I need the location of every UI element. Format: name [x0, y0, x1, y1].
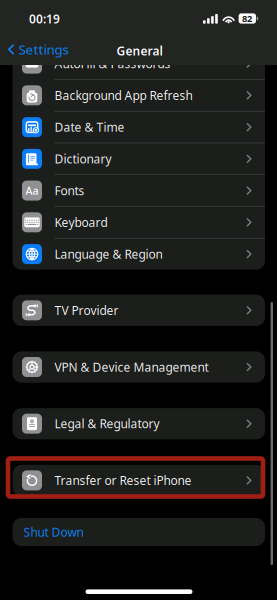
button[interactable]: Shut Down — [12, 518, 265, 546]
staticText: Dictionary — [54, 151, 111, 167]
staticText: 82 — [242, 12, 252, 25]
staticText: Keyboard — [54, 214, 107, 230]
button[interactable]: Transfer or Reset iPhone — [12, 465, 265, 496]
button[interactable]: Dictionary — [12, 143, 265, 174]
button[interactable]: Date & Time — [12, 111, 265, 143]
staticText: Settings — [18, 40, 68, 58]
button[interactable]: VPN & Device Management — [12, 351, 265, 383]
button[interactable]: Keyboard — [12, 207, 265, 238]
staticText: Fonts — [54, 183, 84, 198]
staticText: Date & Time — [54, 119, 124, 135]
staticText: Shut Down — [23, 524, 83, 540]
button[interactable]: Language & Region — [12, 238, 265, 270]
button[interactable]: AutoFill & Passwords — [12, 48, 265, 79]
button[interactable]: Settings — [2, 35, 74, 63]
button[interactable]: Legal & Regulatory — [12, 408, 265, 439]
staticText: VPN & Device Management — [54, 359, 208, 375]
staticText: 00:19 — [29, 11, 60, 27]
staticText: TV Provider — [54, 302, 118, 318]
button[interactable]: Background App Refresh — [12, 80, 265, 111]
staticText: Aa — [25, 183, 38, 198]
staticText: Language & Region — [54, 246, 162, 262]
staticText: AutoFill & Passwords — [54, 56, 170, 71]
button[interactable]: Aa — [12, 175, 265, 206]
staticText: Legal & Regulatory — [54, 416, 159, 432]
staticText: Transfer or Reset iPhone — [54, 472, 191, 488]
staticText: Background App Refresh — [54, 87, 192, 103]
staticText: General — [116, 43, 162, 59]
button[interactable]: TV Provider — [12, 295, 265, 326]
